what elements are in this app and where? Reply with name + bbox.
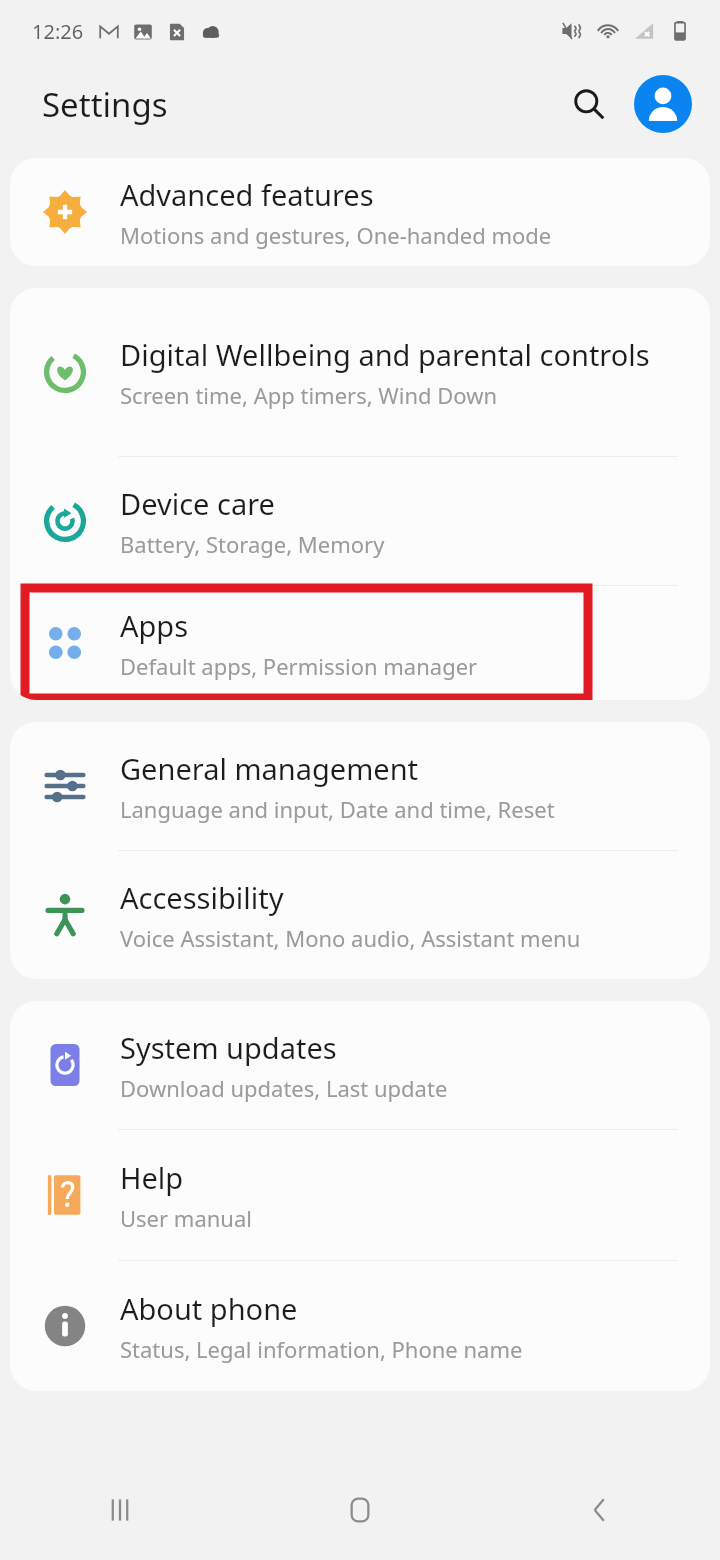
button[interactable]: Help — [10, 1130, 710, 1260]
button[interactable]: Account — [634, 75, 692, 133]
staticText: Accessibility — [120, 878, 284, 917]
staticText: Battery, Storage, Memory — [120, 529, 385, 559]
button[interactable]: Digital Wellbeing and parental controls — [10, 288, 710, 456]
button[interactable]: Device care — [10, 457, 710, 585]
staticText: Status, Legal information, Phone name — [120, 1334, 523, 1364]
staticText: Voice Assistant, Mono audio, Assistant m… — [120, 923, 581, 953]
staticText: Download updates, Last update — [120, 1073, 448, 1103]
staticText: About phone — [120, 1289, 298, 1328]
button[interactable]: Accessibility — [10, 851, 710, 979]
button[interactable]: General management — [10, 722, 710, 850]
button[interactable]: About phone — [10, 1261, 710, 1391]
button[interactable]: Back — [480, 1460, 720, 1560]
staticText: User manual — [120, 1203, 252, 1233]
button[interactable]: System updates — [10, 1001, 710, 1129]
button[interactable]: Search — [560, 75, 618, 133]
staticText: Digital Wellbeing and parental controls — [120, 335, 650, 374]
staticText: Screen time, App timers, Wind Down — [120, 380, 498, 410]
staticText: Default apps, Permission manager — [120, 651, 478, 681]
staticText: System updates — [120, 1028, 337, 1067]
staticText: 12:26 — [32, 18, 84, 45]
staticText: Language and input, Date and time, Reset — [120, 794, 555, 824]
staticText: Settings — [42, 82, 168, 127]
staticText: Advanced features — [120, 175, 374, 214]
staticText: Help — [120, 1158, 184, 1197]
button[interactable]: Apps — [10, 586, 710, 700]
button[interactable]: Advanced features — [10, 158, 710, 266]
button[interactable]: Recents — [0, 1460, 240, 1560]
staticText: Motions and gestures, One-handed mode — [120, 220, 552, 250]
staticText: Apps — [120, 606, 189, 645]
staticText: Device care — [120, 484, 275, 523]
staticText: General management — [120, 749, 419, 788]
button[interactable]: Home — [240, 1460, 480, 1560]
